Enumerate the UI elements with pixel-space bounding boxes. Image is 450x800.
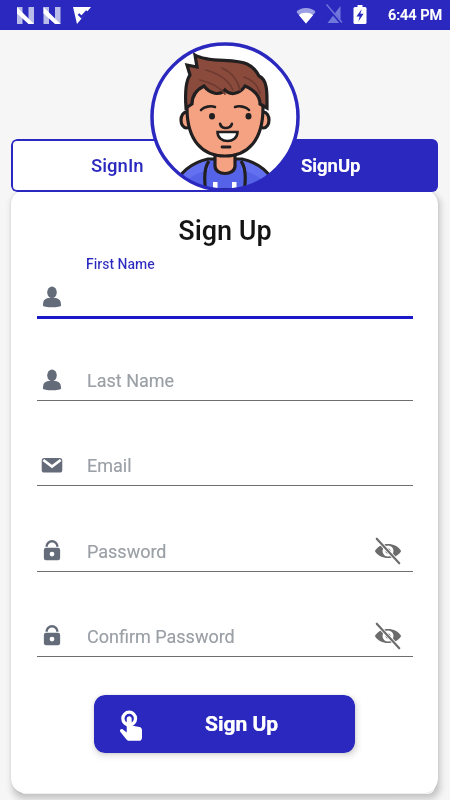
staticText: 6:44 PM <box>388 7 443 24</box>
staticText: Last Name <box>87 370 175 391</box>
button[interactable]: SignUp <box>224 139 438 192</box>
staticText: Confirm Password <box>87 626 235 647</box>
button[interactable]: SignIn <box>11 139 224 192</box>
staticText: Email <box>87 455 132 476</box>
staticText: SignUp <box>301 155 361 177</box>
staticText: Sign Up <box>0 215 450 247</box>
button[interactable]: Show password <box>369 532 407 570</box>
button[interactable]: Sign Up <box>94 695 355 753</box>
button[interactable]: Show password <box>369 617 407 655</box>
staticText: First Name <box>86 256 155 272</box>
staticText: Password <box>87 541 167 562</box>
staticText: Sign Up <box>205 712 279 737</box>
staticText: SignIn <box>91 155 144 177</box>
